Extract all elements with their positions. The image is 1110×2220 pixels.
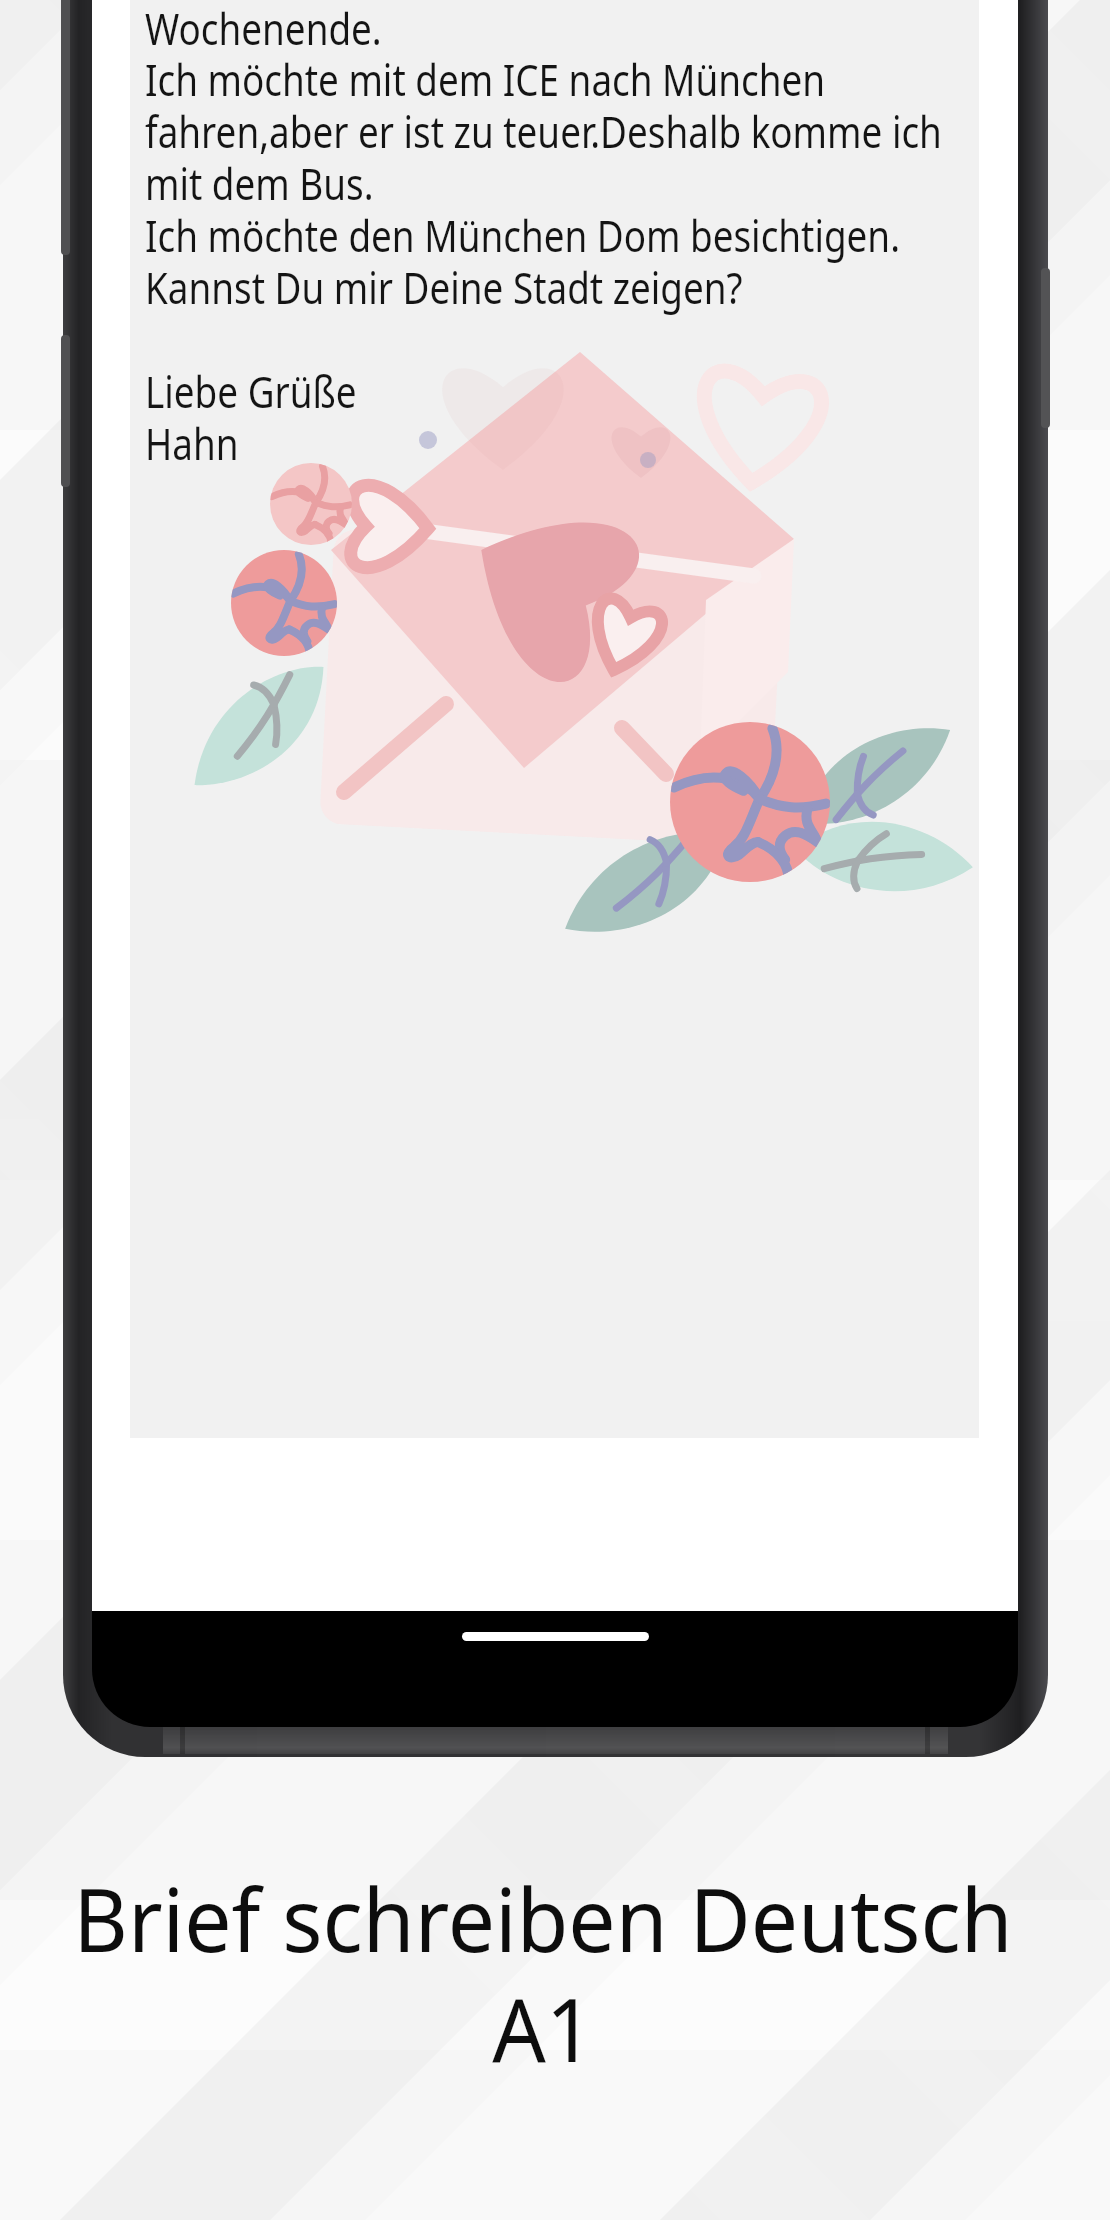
staticText: Brief schreiben Deutsch A1 — [60, 1859, 1025, 2088]
staticText: Wochenende. Ich möchte mit dem ICE nach … — [145, 0, 942, 473]
button[interactable]: Home — [370, 1606, 740, 1666]
button[interactable]: Brief schreiben Deutsch A1 — [60, 1859, 1025, 2088]
button[interactable] — [130, 0, 979, 1438]
